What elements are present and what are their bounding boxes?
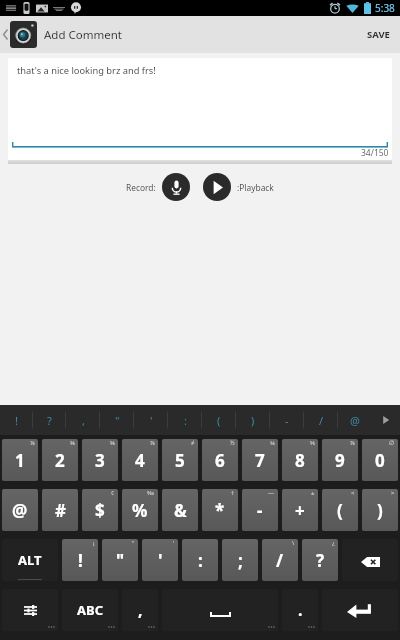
staticText: ; bbox=[238, 549, 243, 572]
staticText: - bbox=[285, 413, 289, 428]
button[interactable]: / bbox=[262, 539, 298, 581]
staticText: ABC bbox=[77, 601, 103, 619]
staticText: 9 bbox=[335, 449, 345, 472]
staticText: $ bbox=[95, 499, 105, 522]
button[interactable]: . bbox=[282, 589, 318, 631]
staticText: \ bbox=[292, 539, 295, 547]
button[interactable]: ' bbox=[142, 539, 178, 581]
staticText: 3 bbox=[95, 449, 105, 472]
button[interactable]: Space bbox=[162, 589, 278, 631]
button[interactable]: ABC bbox=[62, 589, 118, 631]
button[interactable]: ' bbox=[134, 405, 168, 435]
staticText: : bbox=[198, 549, 203, 572]
staticText: 5 bbox=[175, 449, 185, 472]
staticText: ( bbox=[337, 499, 343, 522]
button[interactable]: % bbox=[122, 489, 158, 531]
button[interactable]: ! bbox=[62, 539, 98, 581]
staticText: ¡ bbox=[93, 539, 95, 547]
staticText: ' bbox=[158, 549, 163, 572]
staticText: ⅛ bbox=[30, 439, 35, 447]
staticText: 8 bbox=[295, 449, 305, 472]
button[interactable]: ( bbox=[322, 489, 358, 531]
button[interactable]: @ bbox=[2, 489, 38, 531]
button[interactable]: + bbox=[282, 489, 318, 531]
staticText: ⅞ bbox=[350, 439, 355, 447]
staticText: 2 bbox=[55, 449, 65, 472]
button[interactable]: 7 bbox=[242, 439, 278, 481]
button[interactable]: 5 bbox=[162, 439, 198, 481]
button[interactable]: Enter bbox=[322, 589, 398, 631]
button[interactable]: 3 bbox=[82, 439, 118, 481]
button[interactable]: / bbox=[304, 405, 338, 435]
button[interactable]: ; bbox=[222, 539, 258, 581]
staticText: ⅚ bbox=[310, 439, 315, 447]
button[interactable]: ? bbox=[33, 405, 66, 435]
staticText: that's a nice looking brz and frs! bbox=[17, 64, 156, 77]
staticText: † bbox=[231, 489, 235, 497]
button[interactable]: @ bbox=[338, 405, 372, 435]
staticText: : bbox=[184, 413, 187, 428]
button[interactable]: 6 bbox=[202, 439, 238, 481]
button[interactable]: & bbox=[162, 489, 198, 531]
staticText: 34/150 bbox=[361, 147, 389, 159]
staticText: ? bbox=[47, 413, 52, 428]
button[interactable]: ( bbox=[202, 405, 236, 435]
button[interactable]: ! bbox=[0, 405, 33, 435]
staticText: , bbox=[138, 599, 143, 621]
staticText: & bbox=[174, 499, 187, 522]
button[interactable]: " bbox=[100, 405, 134, 435]
staticText: / bbox=[319, 413, 324, 428]
staticText: ? bbox=[316, 549, 325, 572]
button[interactable]: 1 bbox=[2, 439, 38, 481]
button[interactable]: More suggestions bbox=[372, 405, 400, 435]
button[interactable]: 2 bbox=[42, 439, 78, 481]
staticText: :Playback bbox=[237, 182, 274, 193]
staticText: # bbox=[55, 499, 66, 522]
button[interactable]: Keyboard settings bbox=[2, 589, 58, 631]
button[interactable]: ? bbox=[302, 539, 338, 581]
button[interactable]: 0 bbox=[362, 439, 398, 481]
staticText: 4 bbox=[135, 449, 145, 472]
staticText: ‰ bbox=[147, 489, 155, 497]
staticText: % bbox=[132, 499, 148, 522]
staticText: + bbox=[295, 499, 305, 522]
button[interactable]: SAVE bbox=[355, 16, 400, 53]
button[interactable]: Record bbox=[162, 173, 190, 201]
button[interactable]: , bbox=[66, 405, 100, 435]
staticText: @ bbox=[12, 499, 28, 522]
staticText: 5:38 bbox=[375, 1, 395, 15]
button[interactable]: : bbox=[168, 405, 202, 435]
button[interactable]: ALT bbox=[2, 539, 58, 581]
staticText: ! bbox=[78, 549, 83, 572]
staticText: ' bbox=[150, 413, 153, 428]
staticText: < bbox=[351, 489, 355, 497]
button[interactable]: " bbox=[102, 539, 138, 581]
button[interactable]: Navigate up bbox=[0, 16, 10, 53]
button[interactable]: 8 bbox=[282, 439, 318, 481]
button[interactable]: Backspace bbox=[342, 539, 398, 581]
button[interactable]: ) bbox=[236, 405, 270, 435]
staticText: SAVE bbox=[367, 28, 390, 41]
staticText: ≠ bbox=[191, 439, 195, 447]
staticText: / bbox=[276, 549, 284, 572]
button[interactable]: Playback bbox=[203, 173, 231, 201]
staticText: . bbox=[298, 599, 303, 621]
button[interactable]: , bbox=[122, 589, 158, 631]
button[interactable]: : bbox=[182, 539, 218, 581]
button[interactable]: # bbox=[42, 489, 78, 531]
staticText: * bbox=[215, 499, 225, 522]
button[interactable]: 9 bbox=[322, 439, 358, 481]
button[interactable]: - bbox=[242, 489, 278, 531]
button[interactable]: * bbox=[202, 489, 238, 531]
staticText: ⅞ bbox=[150, 439, 155, 447]
staticText: ( bbox=[217, 413, 221, 428]
button[interactable]: $ bbox=[82, 489, 118, 531]
staticText: " bbox=[116, 549, 125, 572]
staticText: 1 bbox=[15, 449, 25, 472]
staticText: > bbox=[391, 489, 395, 497]
button[interactable]: 4 bbox=[122, 439, 158, 481]
button[interactable]: - bbox=[270, 405, 304, 435]
staticText: ⅝ bbox=[110, 439, 115, 447]
staticText: Record: bbox=[126, 182, 156, 193]
button[interactable]: ) bbox=[362, 489, 398, 531]
